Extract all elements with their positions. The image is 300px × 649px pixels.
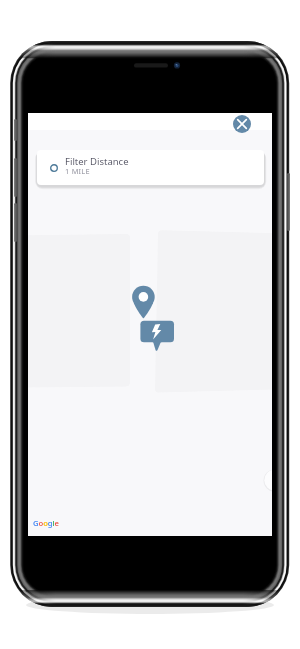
staticText: Google <box>33 518 59 528</box>
button[interactable]: Filter Distance <box>37 150 264 185</box>
staticText: Filter Distance <box>65 155 129 168</box>
button[interactable]: Close <box>233 115 251 133</box>
staticText: 1 MILE <box>65 166 90 176</box>
